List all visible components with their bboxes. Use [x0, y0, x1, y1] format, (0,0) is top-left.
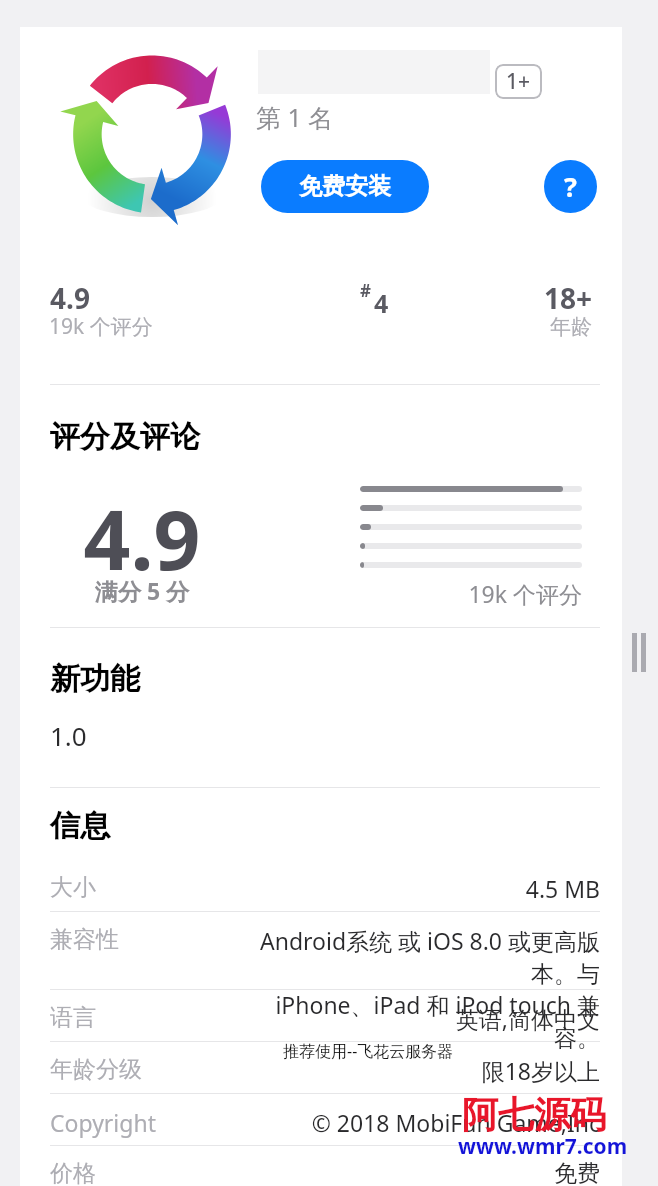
- staticText: 免费安装: [299, 172, 391, 201]
- staticText: 4: [374, 286, 389, 320]
- staticText: 语言: [50, 1003, 230, 1032]
- staticText: 评分及评论: [50, 418, 200, 456]
- button[interactable]: Copyright: [50, 1107, 600, 1138]
- button[interactable]: Age rating one plus: [495, 64, 542, 99]
- staticText: 年龄: [490, 314, 592, 340]
- staticText: © 2018 MobiFun Game,Inc: [230, 1107, 600, 1138]
- staticText: 满分 5 分: [66, 575, 218, 606]
- staticText: 信息: [50, 807, 110, 845]
- staticText: 1.0: [50, 718, 87, 753]
- staticText: 4.5 MB: [230, 873, 600, 904]
- button[interactable]: 语言: [50, 1003, 600, 1034]
- staticText: Android系统 或 iOS 8.0 或更高版本。与: [230, 925, 600, 989]
- staticText: 第 1 名: [256, 100, 334, 134]
- staticText: 1+: [506, 67, 531, 96]
- button[interactable]: 兼容性: [50, 925, 600, 1053]
- staticText: Copyright: [50, 1107, 230, 1138]
- staticText: 兼容性: [50, 925, 230, 954]
- staticText: #: [360, 279, 371, 302]
- staticText: 推荐使用--飞花云服务器: [283, 1040, 454, 1062]
- staticText: 19k 个评分: [360, 578, 582, 609]
- staticText: www.wmr7.com: [458, 1132, 628, 1161]
- staticText: ?: [564, 168, 577, 205]
- staticText: 4.9: [66, 482, 218, 594]
- staticText: 大小: [50, 873, 230, 902]
- staticText: 限18岁以上: [230, 1055, 600, 1086]
- button[interactable]: 大小: [50, 873, 600, 904]
- staticText: 新功能: [50, 660, 140, 698]
- staticText: 免费: [230, 1159, 600, 1186]
- staticText: iPhone、iPad 和 iPod touch 兼容。: [230, 989, 600, 1053]
- staticText: 年龄分级: [50, 1055, 230, 1084]
- button[interactable]: 年龄分级: [50, 1055, 600, 1086]
- staticText: 18+: [490, 279, 592, 317]
- button[interactable]: 免费安装: [261, 160, 429, 213]
- button[interactable]: Help: [544, 160, 597, 213]
- staticText: 19k 个评分: [49, 312, 153, 341]
- staticText: 价格: [50, 1159, 230, 1186]
- staticText: 英语,简体中文: [230, 1003, 600, 1034]
- staticText: 4.9: [50, 279, 90, 317]
- button[interactable]: 价格: [50, 1159, 600, 1186]
- staticText: 阿七源码: [462, 1092, 606, 1137]
